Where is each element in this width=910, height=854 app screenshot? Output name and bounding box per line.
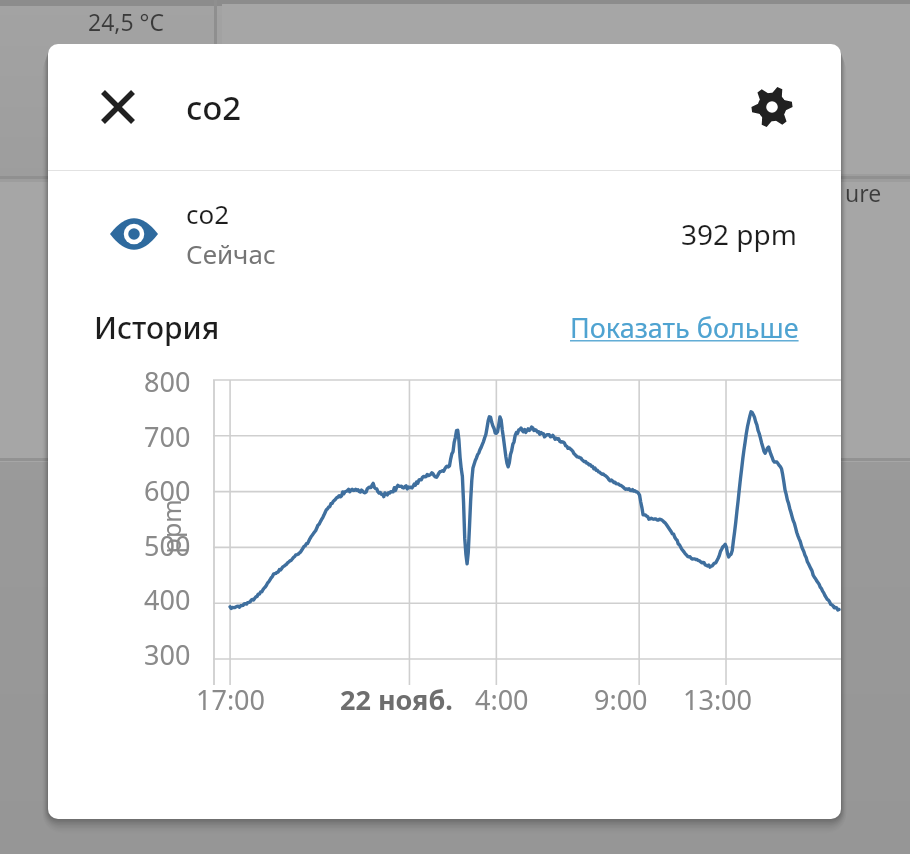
staticText: 392 ppm [681, 215, 797, 253]
staticText: 300 [144, 636, 191, 673]
button[interactable]: co2 [48, 171, 841, 296]
staticText: Сейчас [186, 236, 276, 271]
button[interactable]: Close [92, 81, 144, 133]
button[interactable]: Показать больше [570, 309, 799, 346]
button[interactable]: Settings [745, 80, 799, 134]
staticText: 22 нояб. [340, 681, 453, 718]
staticText: История [94, 307, 220, 348]
staticText: 9:00 [594, 681, 648, 718]
staticText: 13:00 [683, 681, 753, 718]
staticText: 800 [144, 363, 191, 400]
staticText: 600 [144, 472, 191, 509]
staticText: 17:00 [196, 681, 266, 718]
staticText: co2 [186, 85, 242, 130]
staticText: Показать больше [570, 309, 799, 346]
staticText: ppm [153, 498, 187, 553]
staticText: co2 [186, 196, 230, 231]
staticText: ure [845, 177, 882, 208]
staticText: 700 [144, 418, 191, 455]
staticText: 4:00 [475, 681, 529, 718]
staticText: 24,5 °C [88, 6, 164, 37]
staticText: 400 [144, 581, 191, 618]
staticText: 500 [144, 527, 191, 564]
